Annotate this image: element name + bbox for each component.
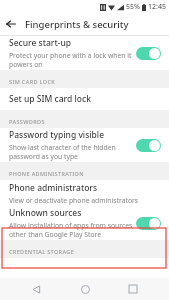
button[interactable]: Secure start-up [0, 36, 169, 70]
staticText: SIM CARD LOCK [9, 78, 56, 85]
staticText: Allow installation of apps from sources … [9, 221, 133, 239]
staticText: 12:45 [148, 2, 166, 12]
button[interactable]: Unknown sources [0, 206, 169, 240]
staticText: Fingerprints & security [25, 18, 129, 31]
staticText: PHONE ADMINISTRATION [9, 170, 84, 177]
button[interactable]: Toggle Secure start-up [133, 44, 164, 63]
button[interactable]: Toggle Password typing visible [133, 136, 164, 155]
staticText: Unknown sources [9, 207, 82, 219]
staticText: PASSWORDS [9, 118, 45, 125]
staticText: Show last character of the hidden passwo… [9, 143, 116, 161]
staticText: Phone administrators [9, 182, 98, 194]
button[interactable]: Toggle Unknown sources [133, 214, 164, 233]
button[interactable]: Password typing visible [0, 128, 169, 162]
staticText: 55% [126, 2, 140, 12]
staticText: Set up SIM card lock [9, 93, 91, 105]
staticText: CREDENTIAL STORAGE [9, 248, 75, 255]
button[interactable]: Back [23, 278, 49, 300]
staticText: View or deactivate phone administrators [9, 196, 139, 205]
staticText: Secure start-up [9, 37, 71, 49]
button[interactable]: Phone administrators [0, 180, 169, 206]
button[interactable]: Recent apps [120, 278, 146, 300]
staticText: Protect your phone with a lock when it p… [9, 51, 132, 69]
button[interactable]: Back [0, 13, 22, 35]
button[interactable]: Home [72, 278, 98, 300]
staticText: Password typing visible [9, 129, 105, 141]
button[interactable]: Set up SIM card lock [0, 88, 169, 110]
